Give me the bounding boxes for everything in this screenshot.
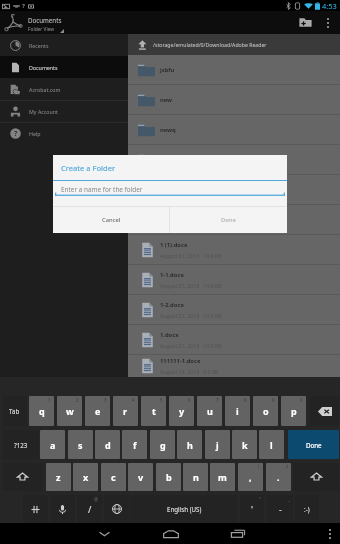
button[interactable]: 1-2.docx bbox=[0, 295, 340, 324]
button[interactable]: c bbox=[101, 463, 126, 491]
button[interactable]: Settings bbox=[23, 495, 48, 523]
button[interactable]: g bbox=[150, 430, 175, 459]
staticText: 6 bbox=[188, 397, 191, 403]
staticText: 3 bbox=[104, 397, 107, 403]
button[interactable]: b bbox=[156, 463, 181, 491]
button[interactable]: 1.docx bbox=[0, 325, 340, 354]
button[interactable]: n bbox=[183, 463, 208, 491]
button[interactable]: m bbox=[210, 463, 235, 491]
button[interactable]: Create new folder bbox=[292, 11, 318, 34]
button[interactable]: u bbox=[197, 396, 222, 426]
button[interactable]: 1-1.docx bbox=[0, 265, 340, 294]
button[interactable]: Done bbox=[170, 207, 287, 233]
button[interactable]: More options bbox=[320, 523, 340, 544]
button[interactable]: k bbox=[232, 430, 257, 459]
button[interactable]: - bbox=[267, 495, 293, 523]
staticText: 5 bbox=[160, 397, 163, 403]
button[interactable]: Cancel bbox=[53, 207, 169, 233]
staticText: ? bbox=[14, 129, 18, 139]
button[interactable]: More options bbox=[318, 11, 338, 34]
button[interactable]: v bbox=[128, 463, 153, 491]
other: Shift bbox=[311, 472, 322, 482]
button[interactable]: ' bbox=[240, 495, 264, 523]
button[interactable]: j bbox=[205, 430, 230, 459]
button[interactable]: ?123 bbox=[2, 430, 39, 459]
button[interactable]: Shift bbox=[2, 463, 43, 491]
staticText: Done bbox=[221, 216, 236, 224]
button[interactable]: f bbox=[122, 430, 147, 459]
staticText: 0 bbox=[300, 397, 303, 403]
staticText: newq bbox=[160, 126, 176, 134]
button[interactable]: p bbox=[0, 145, 340, 174]
button[interactable]: 1 (1).docx bbox=[0, 235, 340, 264]
button[interactable]: Recent apps bbox=[216, 523, 260, 544]
button[interactable]: s bbox=[68, 430, 93, 459]
button[interactable]: 111111-1.docx bbox=[0, 355, 340, 377]
button[interactable]: , bbox=[238, 463, 263, 491]
staticText: 4:53 bbox=[322, 1, 337, 11]
button[interactable]: Open navigation drawer bbox=[0, 11, 150, 34]
button[interactable]: Hide keyboard bbox=[82, 523, 126, 544]
button[interactable]: d bbox=[95, 430, 120, 459]
staticText: . bbox=[277, 471, 280, 483]
button[interactable]: . bbox=[266, 463, 291, 491]
button[interactable]: y bbox=[169, 396, 194, 426]
button[interactable]: :-) bbox=[295, 495, 319, 523]
staticText: m bbox=[218, 471, 227, 483]
staticText: x bbox=[83, 471, 89, 483]
button[interactable]: p bbox=[281, 396, 306, 426]
button[interactable]: q bbox=[29, 396, 54, 426]
staticText: e bbox=[95, 405, 101, 417]
button[interactable]: a bbox=[40, 430, 65, 459]
button[interactable]: My Account bbox=[0, 100, 128, 122]
other: Shift bbox=[17, 472, 28, 482]
staticText: p bbox=[291, 405, 297, 417]
button[interactable]: jsbfu bbox=[0, 55, 340, 84]
button[interactable]: e bbox=[85, 396, 110, 426]
button[interactable]: / bbox=[77, 495, 102, 523]
button[interactable]: English (US) bbox=[130, 495, 238, 523]
button[interactable]: Backspace bbox=[310, 396, 339, 426]
button[interactable]: newq bbox=[0, 115, 340, 144]
staticText: - bbox=[279, 503, 282, 515]
staticText: y bbox=[179, 405, 185, 417]
staticText: i bbox=[236, 405, 239, 417]
button[interactable]: Home bbox=[149, 523, 193, 544]
other: Backspace bbox=[318, 407, 332, 416]
staticText: Documents bbox=[28, 16, 62, 24]
staticText: Cancel bbox=[102, 216, 121, 224]
other: Settings bbox=[31, 505, 40, 514]
button[interactable]: ? bbox=[0, 122, 128, 144]
button[interactable]: h bbox=[177, 430, 202, 459]
button[interactable]: new bbox=[0, 85, 340, 114]
button[interactable]: Acrobat.com bbox=[0, 78, 128, 100]
button[interactable]: o bbox=[253, 396, 278, 426]
button[interactable]: l bbox=[259, 430, 284, 459]
button[interactable]: tes bbox=[0, 205, 340, 234]
button[interactable]: Tab bbox=[2, 396, 27, 426]
staticText: d bbox=[105, 439, 111, 451]
button[interactable]: qw bbox=[0, 175, 340, 204]
staticText: 1 bbox=[48, 397, 51, 403]
button[interactable]: /storage/emulated/0/Download/Adobe Reade… bbox=[0, 34, 340, 55]
button[interactable]: r bbox=[113, 396, 138, 426]
staticText: u bbox=[207, 405, 213, 417]
staticText: ' bbox=[251, 503, 254, 515]
button[interactable]: w bbox=[57, 396, 82, 426]
button[interactable]: t bbox=[141, 396, 166, 426]
button[interactable]: i bbox=[225, 396, 250, 426]
staticText: q bbox=[39, 405, 45, 417]
button[interactable]: z bbox=[46, 463, 71, 491]
staticText: 1.docx bbox=[160, 331, 179, 339]
staticText: ?123 bbox=[14, 441, 28, 449]
button[interactable]: Documents bbox=[0, 56, 128, 78]
button[interactable]: Shift bbox=[293, 463, 339, 491]
button[interactable]: Voice input bbox=[50, 495, 75, 523]
staticText: English (US) bbox=[167, 505, 202, 513]
button[interactable]: Recents bbox=[0, 34, 128, 56]
button[interactable]: Change language bbox=[104, 495, 129, 523]
button[interactable]: Done bbox=[288, 430, 339, 459]
button[interactable]: x bbox=[73, 463, 98, 491]
